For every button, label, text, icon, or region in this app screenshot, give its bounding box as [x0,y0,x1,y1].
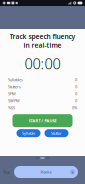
staticText: Stutter [51,130,62,136]
staticText: SWPM [8,98,20,103]
staticText: 0 [75,98,77,103]
staticText: 00:00 [24,54,60,73]
staticText: START / PAUSE [28,118,56,123]
staticText: 0% [72,105,77,110]
staticText: Track speech fluency [9,32,75,41]
staticText: %SS [8,105,15,110]
staticText: Syllable [22,130,35,136]
staticText: in real-time [23,41,61,50]
staticText: 0 [75,84,77,89]
staticText: Syllables [8,77,23,82]
button[interactable]: START / PAUSE [12,114,72,127]
staticText: 0 [75,77,77,82]
staticText: › [72,169,73,175]
button[interactable]: Stutter [44,129,68,137]
staticText: Home [40,169,51,175]
button[interactable]: Home [14,166,78,178]
staticText: 0 [75,91,77,96]
staticText: Dur [3,169,10,175]
button[interactable]: Syllable [16,129,40,137]
staticText: Stutters [8,84,21,89]
staticText: SPM [8,91,16,96]
